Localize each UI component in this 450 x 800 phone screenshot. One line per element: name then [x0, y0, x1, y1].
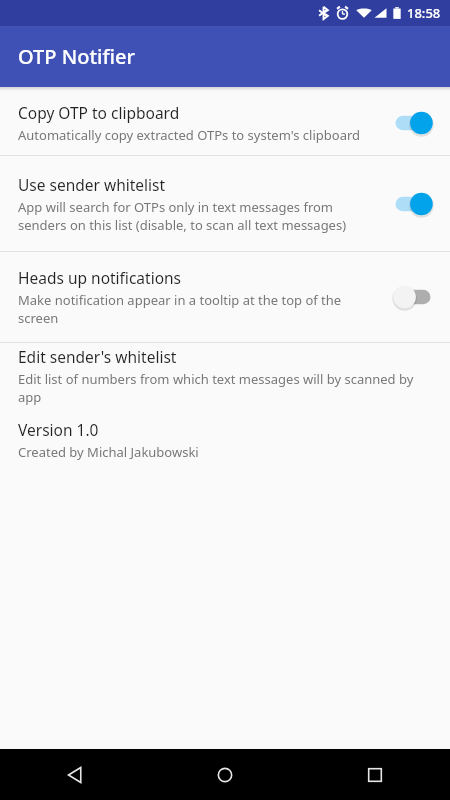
- button[interactable]: Enabled: [388, 186, 438, 222]
- staticText: 18:58: [407, 4, 441, 22]
- staticText: Heads up notifications: [18, 267, 182, 288]
- button[interactable]: Enabled: [388, 105, 438, 141]
- button[interactable]: Back: [0, 749, 150, 800]
- button[interactable]: Copy OTP to clipboard: [0, 91, 450, 155]
- button[interactable]: Home: [150, 749, 300, 800]
- staticText: App will search for OTPs only in text me…: [18, 198, 374, 234]
- button[interactable]: Edit sender's whitelist: [0, 343, 450, 409]
- staticText: OTP Notifier: [18, 43, 135, 70]
- staticText: Edit sender's whitelist: [18, 346, 177, 367]
- staticText: Created by Michal Jakubowski: [18, 443, 199, 461]
- staticText: Automatically copy extracted OTPs to sys…: [18, 126, 361, 144]
- staticText: Version 1.0: [18, 419, 99, 440]
- button[interactable]: Use sender whitelist: [0, 156, 450, 251]
- staticText: Copy OTP to clipboard: [18, 102, 180, 123]
- button[interactable]: Recent apps: [300, 749, 450, 800]
- button[interactable]: Disabled: [388, 279, 438, 315]
- staticText: Use sender whitelist: [18, 174, 166, 195]
- button[interactable]: Version 1.0: [0, 409, 450, 471]
- button[interactable]: Heads up notifications: [0, 252, 450, 342]
- staticText: Make notification appear in a tooltip at…: [18, 291, 374, 327]
- staticText: Edit list of numbers from which text mes…: [18, 370, 436, 406]
